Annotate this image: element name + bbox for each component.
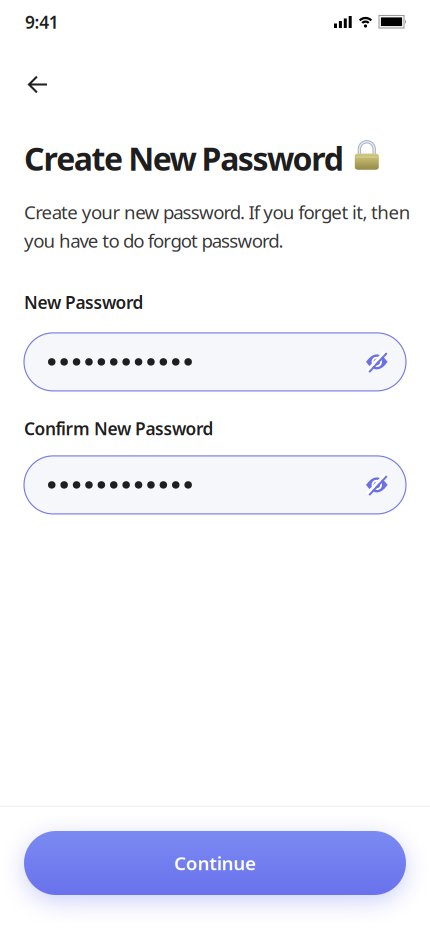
button[interactable]: Back <box>0 34 47 93</box>
staticText: Create New Password <box>24 137 344 179</box>
button[interactable]: Password, hidden. Show password <box>24 333 406 391</box>
staticText: 9:41 <box>25 10 59 33</box>
button[interactable]: Password, hidden. Show password <box>24 456 406 514</box>
staticText: Create your new password. If you forget … <box>24 199 411 253</box>
staticText: Continue <box>174 851 256 875</box>
button[interactable]: Continue <box>24 831 406 895</box>
staticText: New Password <box>24 291 143 314</box>
staticText: Confirm New Password <box>24 417 213 440</box>
